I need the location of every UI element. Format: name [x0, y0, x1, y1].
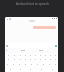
button[interactable] — [28, 57, 33, 62]
button[interactable] — [10, 62, 16, 67]
button[interactable] — [11, 53, 17, 57]
button[interactable] — [33, 53, 38, 57]
button[interactable] — [43, 53, 48, 57]
button[interactable] — [25, 67, 36, 72]
button[interactable] — [11, 57, 17, 62]
button[interactable] — [38, 57, 43, 62]
button[interactable] — [29, 20, 35, 22]
button[interactable] — [43, 57, 48, 62]
button[interactable] — [46, 62, 52, 67]
button[interactable] — [22, 62, 28, 67]
button[interactable] — [16, 62, 22, 67]
button[interactable]: Back — [6, 18, 8, 20]
button[interactable] — [48, 57, 53, 62]
button[interactable] — [33, 26, 56, 29]
button[interactable] — [5, 53, 11, 57]
button[interactable] — [36, 67, 47, 72]
button[interactable] — [28, 53, 33, 57]
button[interactable] — [5, 62, 10, 67]
button[interactable] — [34, 62, 40, 67]
button[interactable] — [48, 53, 53, 57]
button[interactable] — [28, 62, 34, 67]
button[interactable] — [17, 57, 23, 62]
button[interactable] — [47, 67, 58, 72]
staticText: Android text to speech — [16, 2, 49, 6]
button[interactable] — [38, 53, 43, 57]
button[interactable] — [23, 53, 28, 57]
button[interactable] — [53, 57, 58, 62]
button[interactable] — [15, 67, 25, 72]
button[interactable] — [5, 57, 11, 62]
button[interactable] — [23, 57, 28, 62]
button[interactable] — [40, 62, 46, 67]
button[interactable] — [52, 62, 58, 67]
button[interactable] — [33, 57, 38, 62]
button[interactable] — [53, 53, 58, 57]
button[interactable] — [17, 53, 23, 57]
button[interactable] — [5, 67, 15, 72]
